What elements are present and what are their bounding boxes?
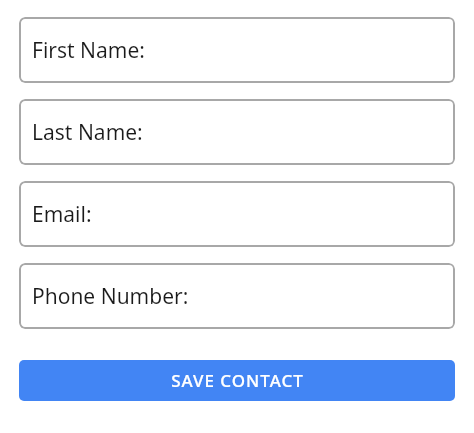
staticText: Phone Number: bbox=[32, 282, 189, 311]
button[interactable]: Phone Number: bbox=[19, 263, 455, 329]
button[interactable]: Last Name: bbox=[19, 99, 455, 165]
button[interactable]: SAVE CONTACT bbox=[19, 360, 455, 401]
staticText: First Name: bbox=[32, 36, 145, 65]
staticText: SAVE CONTACT bbox=[171, 369, 304, 392]
button[interactable]: Email: bbox=[19, 181, 455, 247]
staticText: Last Name: bbox=[32, 118, 143, 147]
button[interactable]: First Name: bbox=[19, 17, 455, 83]
staticText: Email: bbox=[32, 200, 92, 229]
